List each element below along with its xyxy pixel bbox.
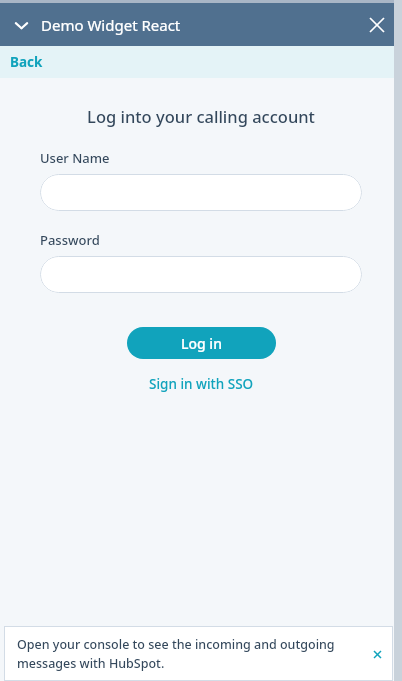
staticText: Sign in with SSO [149, 375, 254, 393]
staticText: Demo Widget React [41, 15, 181, 35]
button[interactable]: Log in [127, 327, 276, 359]
button[interactable]: Sign in with SSO [141, 372, 262, 396]
button[interactable]: Minimize [5, 9, 37, 41]
staticText: Log into your calling account [0, 105, 402, 127]
button[interactable]: Dismiss [366, 643, 388, 665]
button[interactable] [40, 256, 362, 293]
staticText: Back [10, 53, 43, 71]
button[interactable]: Back [0, 46, 402, 78]
button[interactable] [40, 174, 362, 211]
staticText: Open your console to see the incoming an… [17, 636, 348, 672]
staticText: Log in [181, 334, 222, 353]
button[interactable]: Close [362, 10, 392, 40]
staticText: User Name [40, 149, 110, 167]
staticText: Password [40, 231, 100, 249]
